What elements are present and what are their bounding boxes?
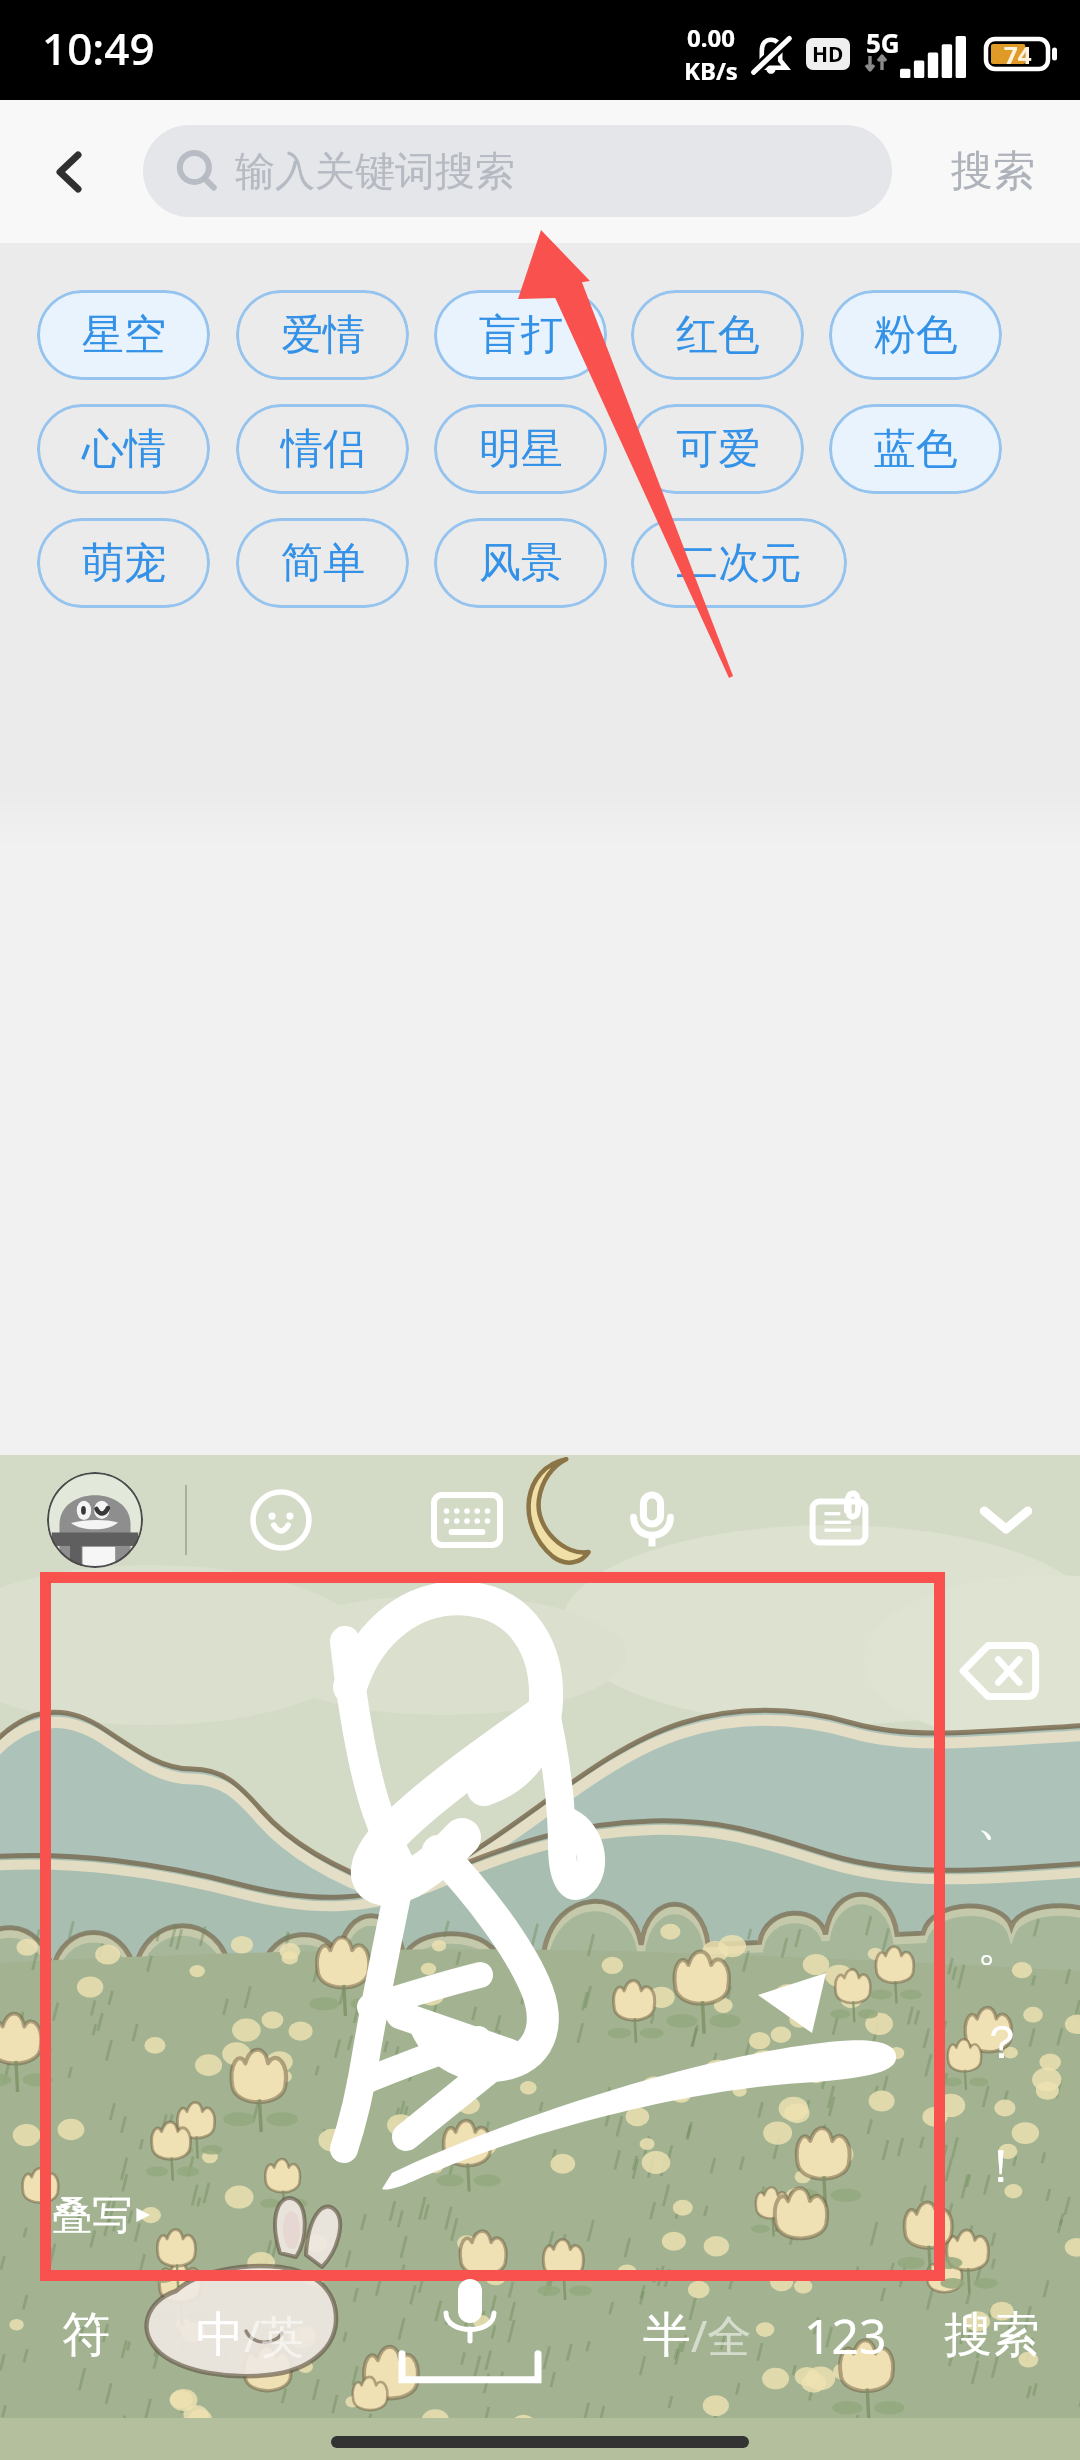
staticText: KB/s xyxy=(684,54,738,87)
button[interactable]: 中 xyxy=(155,2280,345,2390)
button[interactable]: 输入关键词搜索 xyxy=(143,125,892,217)
staticText: 盲打 xyxy=(479,309,563,362)
staticText: 0.00 xyxy=(687,21,735,54)
staticText: HD xyxy=(812,40,844,69)
staticText: 红色 xyxy=(676,309,760,362)
button[interactable]: 二次元 xyxy=(631,518,847,608)
staticText: 。 xyxy=(977,1916,1023,1974)
button[interactable]: 红色 xyxy=(631,290,804,380)
staticText: 搜索 xyxy=(951,145,1035,198)
button[interactable]: ！ xyxy=(953,2119,1049,2215)
staticText: 蓝色 xyxy=(874,423,958,476)
button[interactable]: 星空 xyxy=(37,290,210,380)
staticText: 情侣 xyxy=(281,423,365,476)
button[interactable]: 心情 xyxy=(37,404,210,494)
button[interactable]: 爱情 xyxy=(236,290,409,380)
button[interactable]: 蓝色 xyxy=(829,404,1002,494)
button[interactable]: Night mode xyxy=(513,1457,599,1565)
button[interactable]: 可爱 xyxy=(631,404,804,494)
staticText: 明星 xyxy=(479,423,563,476)
button[interactable]: 粉色 xyxy=(829,290,1002,380)
button[interactable]: 搜索 xyxy=(922,2280,1062,2390)
staticText: 符 xyxy=(62,2305,110,2365)
button[interactable]: 盲打 xyxy=(434,290,607,380)
staticText: 可爱 xyxy=(676,423,760,476)
button[interactable]: 。 xyxy=(952,1897,1048,1993)
button[interactable]: Clipboard xyxy=(791,1472,887,1568)
button[interactable]: 萌宠 xyxy=(37,518,210,608)
staticText: 搜索 xyxy=(944,2305,1040,2365)
staticText: 风景 xyxy=(479,537,563,590)
button[interactable]: 简单 xyxy=(236,518,409,608)
staticText: 心情 xyxy=(82,423,166,476)
staticText: 中 xyxy=(196,2305,244,2365)
staticText: 74 xyxy=(1004,38,1032,71)
button[interactable]: 叠写 xyxy=(52,2190,154,2240)
button[interactable]: Handwriting area xyxy=(40,1572,939,2275)
button[interactable]: 符 xyxy=(16,2280,156,2390)
button[interactable]: 情侣 xyxy=(236,404,409,494)
staticText: 星空 xyxy=(82,309,166,362)
staticText: 输入关键词搜索 xyxy=(235,146,515,196)
staticText: 萌宠 xyxy=(82,537,166,590)
button[interactable]: Collapse keyboard xyxy=(958,1472,1054,1568)
button[interactable]: 明星 xyxy=(434,404,607,494)
button[interactable]: Keyboard xyxy=(419,1472,515,1568)
staticText: 、 xyxy=(977,1790,1023,1848)
staticText: 叠写 xyxy=(52,2190,132,2240)
button[interactable]: Backspace xyxy=(941,1623,1057,1719)
staticText: 粉色 xyxy=(874,309,958,362)
button[interactable]: Account xyxy=(47,1472,143,1568)
button[interactable]: Space xyxy=(370,2273,570,2397)
staticText: ？ xyxy=(979,2014,1025,2072)
staticText: 半 xyxy=(643,2305,691,2365)
button[interactable]: 、 xyxy=(952,1771,1048,1867)
staticText: 简单 xyxy=(281,537,365,590)
button[interactable]: Back xyxy=(20,100,120,243)
button[interactable]: 123 xyxy=(775,2280,915,2390)
staticText: 爱情 xyxy=(281,309,365,362)
staticText: 二次元 xyxy=(676,537,802,590)
staticText: 10:49 xyxy=(42,18,155,78)
staticText: 5G xyxy=(866,25,900,60)
button[interactable]: 半 xyxy=(602,2280,792,2390)
staticText: ！ xyxy=(978,2138,1024,2196)
staticText: /全 xyxy=(691,2305,752,2365)
button[interactable]: Emoji xyxy=(233,1472,329,1568)
button[interactable]: ？ xyxy=(954,1995,1050,2091)
staticText: 123 xyxy=(804,2303,887,2368)
staticText: /英 xyxy=(244,2305,305,2365)
button[interactable]: 搜索 xyxy=(905,100,1080,243)
button[interactable]: Voice input xyxy=(604,1472,700,1568)
button[interactable]: 风景 xyxy=(434,518,607,608)
